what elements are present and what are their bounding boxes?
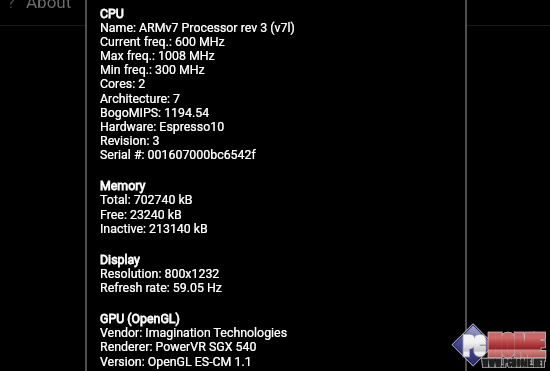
- staticText: Current freq.: 600 MHz: [100, 35, 225, 50]
- staticText: Max freq.: 1008 MHz: [100, 49, 215, 64]
- staticText: Free: 23240 kB: [100, 208, 182, 223]
- staticText: Hardware: Espresso10: [100, 120, 225, 135]
- staticText: WWW.PCHOME.NET: [482, 356, 545, 370]
- staticText: Version: OpenGL ES-CM 1.1: [100, 355, 252, 370]
- staticText: ?: [7, 0, 16, 12]
- staticText: Serial #: 001607000bc6542f: [100, 148, 256, 163]
- staticText: PC: [463, 329, 485, 364]
- staticText: Memory: [100, 179, 146, 194]
- staticText: Refresh rate: 59.05 Hz: [100, 281, 222, 296]
- staticText: PC: [463, 329, 485, 364]
- staticText: CPU: [100, 7, 124, 22]
- staticText: Inactive: 213140 kB: [100, 222, 208, 237]
- staticText: Display: [100, 253, 140, 268]
- staticText: Min freq.: 300 MHz: [100, 63, 205, 78]
- staticText: Renderer: PowerVR SGX 540: [100, 340, 257, 355]
- staticText: Vendor: Imagination Technologies: [100, 326, 288, 341]
- staticText: HOME: [488, 326, 545, 366]
- staticText: HOME: [488, 326, 545, 366]
- staticText: BogoMIPS: 1194.54: [100, 106, 210, 121]
- staticText: GPU (OpenGL): [100, 312, 180, 327]
- staticText: Revision: 3: [100, 134, 160, 149]
- staticText: Architecture: 7: [100, 92, 181, 107]
- other: Help: [7, 0, 16, 12]
- staticText: About: [26, 0, 72, 12]
- staticText: Resolution: 800x1232: [100, 267, 220, 282]
- button[interactable]: Help: [0, 0, 85, 25]
- staticText: Cores: 2: [100, 77, 146, 92]
- staticText: Total: 702740 kB: [100, 193, 193, 208]
- staticText: WWW.PCHOME.NET: [482, 356, 545, 370]
- staticText: Name: ARMv7 Processor rev 3 (v7l): [100, 21, 295, 36]
